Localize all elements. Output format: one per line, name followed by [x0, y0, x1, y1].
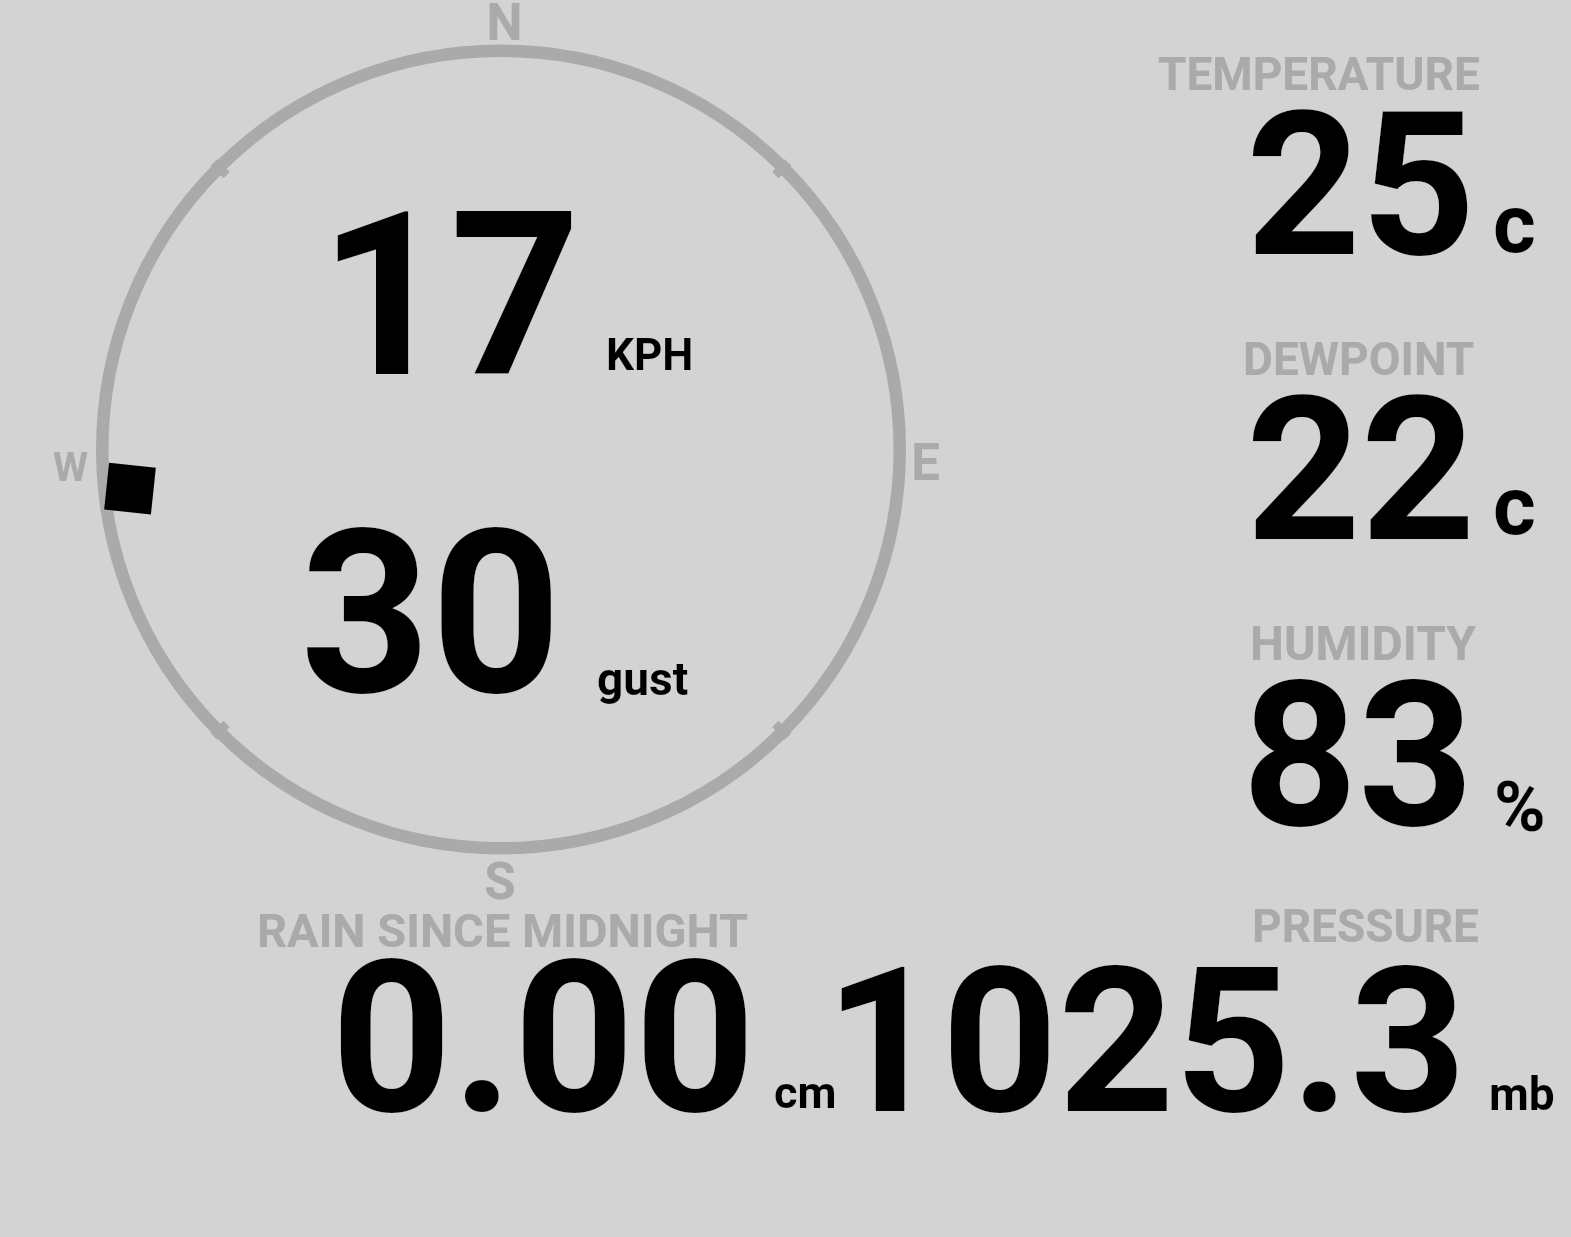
staticText: mb [1489, 1067, 1555, 1121]
staticText: KPH [606, 329, 694, 381]
staticText: c [1493, 458, 1536, 554]
staticText: HUMIDITY [1250, 615, 1476, 671]
staticText: 22 [1246, 353, 1476, 587]
staticText: TEMPERATURE [1158, 47, 1480, 101]
button[interactable]: Temperature [1100, 30, 1571, 290]
staticText: E [911, 433, 940, 493]
staticText: 25 [1246, 68, 1476, 302]
staticText: gust [597, 652, 689, 706]
staticText: 1025.3 [825, 923, 1467, 1161]
button[interactable]: Wind speed and direction [40, 0, 1000, 900]
staticText: 0.00 [331, 915, 756, 1162]
staticText: N [486, 0, 523, 53]
staticText: DEWPOINT [1243, 332, 1475, 386]
staticText: S [484, 852, 516, 912]
button[interactable]: Pressure [860, 895, 1571, 1125]
staticText: 30 [300, 480, 562, 747]
staticText: RAIN SINCE MIDNIGHT [257, 903, 749, 958]
staticText: PRESSURE [1252, 899, 1479, 953]
staticText: W [53, 444, 88, 491]
button[interactable]: Rain since midnight [240, 895, 860, 1125]
staticText: c [1493, 176, 1536, 272]
staticText: 83 [1242, 638, 1474, 875]
button[interactable]: Humidity [1100, 600, 1571, 860]
staticText: 17 [319, 162, 581, 429]
staticText: % [1494, 766, 1546, 848]
staticText: cm [774, 1066, 837, 1119]
button[interactable]: Dew point [1100, 315, 1571, 575]
